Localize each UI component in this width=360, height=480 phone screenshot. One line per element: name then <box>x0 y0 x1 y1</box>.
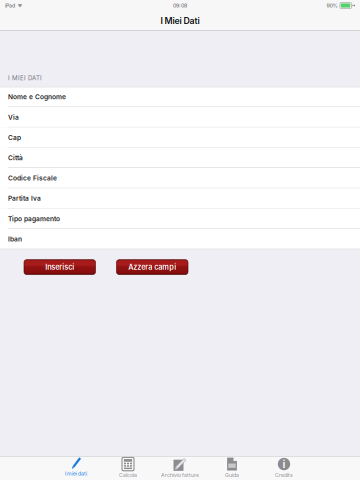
staticText: Codice Fiscale <box>8 174 57 182</box>
button[interactable]: Inserisci <box>24 260 95 274</box>
staticText: Archivio fatture <box>161 472 199 478</box>
button[interactable]: i <box>258 455 310 480</box>
staticText: Inserisci <box>45 263 74 272</box>
button[interactable]: Calcola <box>102 455 154 480</box>
staticText: Cap <box>8 134 21 142</box>
button[interactable]: Guida <box>206 455 258 480</box>
staticText: Credits <box>275 472 293 478</box>
staticText: Calcola <box>119 472 137 478</box>
staticText: I Miei Dati <box>160 15 199 26</box>
staticText: Nome e Cognome <box>8 93 66 101</box>
staticText: Città <box>8 154 23 162</box>
staticText: Azzera campi <box>128 263 176 272</box>
button[interactable]: Azzera campi <box>116 260 188 274</box>
staticText: Via <box>8 113 19 121</box>
button[interactable]: Iban <box>0 229 360 249</box>
button[interactable]: Partita Iva <box>0 188 360 209</box>
button[interactable]: Nome e Cognome <box>0 87 360 107</box>
button[interactable]: Via <box>0 107 360 127</box>
button[interactable]: Archivio fatture <box>154 455 206 480</box>
button[interactable]: Cap <box>0 127 360 148</box>
staticText: Tipo pagamento <box>8 215 60 223</box>
staticText: I MIEI DATI <box>8 74 42 82</box>
staticText: 90% <box>326 2 337 9</box>
staticText: 09:08 <box>173 2 187 9</box>
staticText: Iban <box>8 235 22 243</box>
button[interactable]: Città <box>0 148 360 168</box>
staticText: i <box>282 458 285 470</box>
button[interactable]: Tipo pagamento <box>0 209 360 229</box>
staticText: Partita Iva <box>8 194 41 202</box>
staticText: Guida <box>225 472 239 478</box>
staticText: I miei dati <box>65 470 87 477</box>
button[interactable]: Codice Fiscale <box>0 168 360 188</box>
staticText: iPad <box>5 2 15 9</box>
button[interactable]: I miei dati <box>50 455 102 480</box>
